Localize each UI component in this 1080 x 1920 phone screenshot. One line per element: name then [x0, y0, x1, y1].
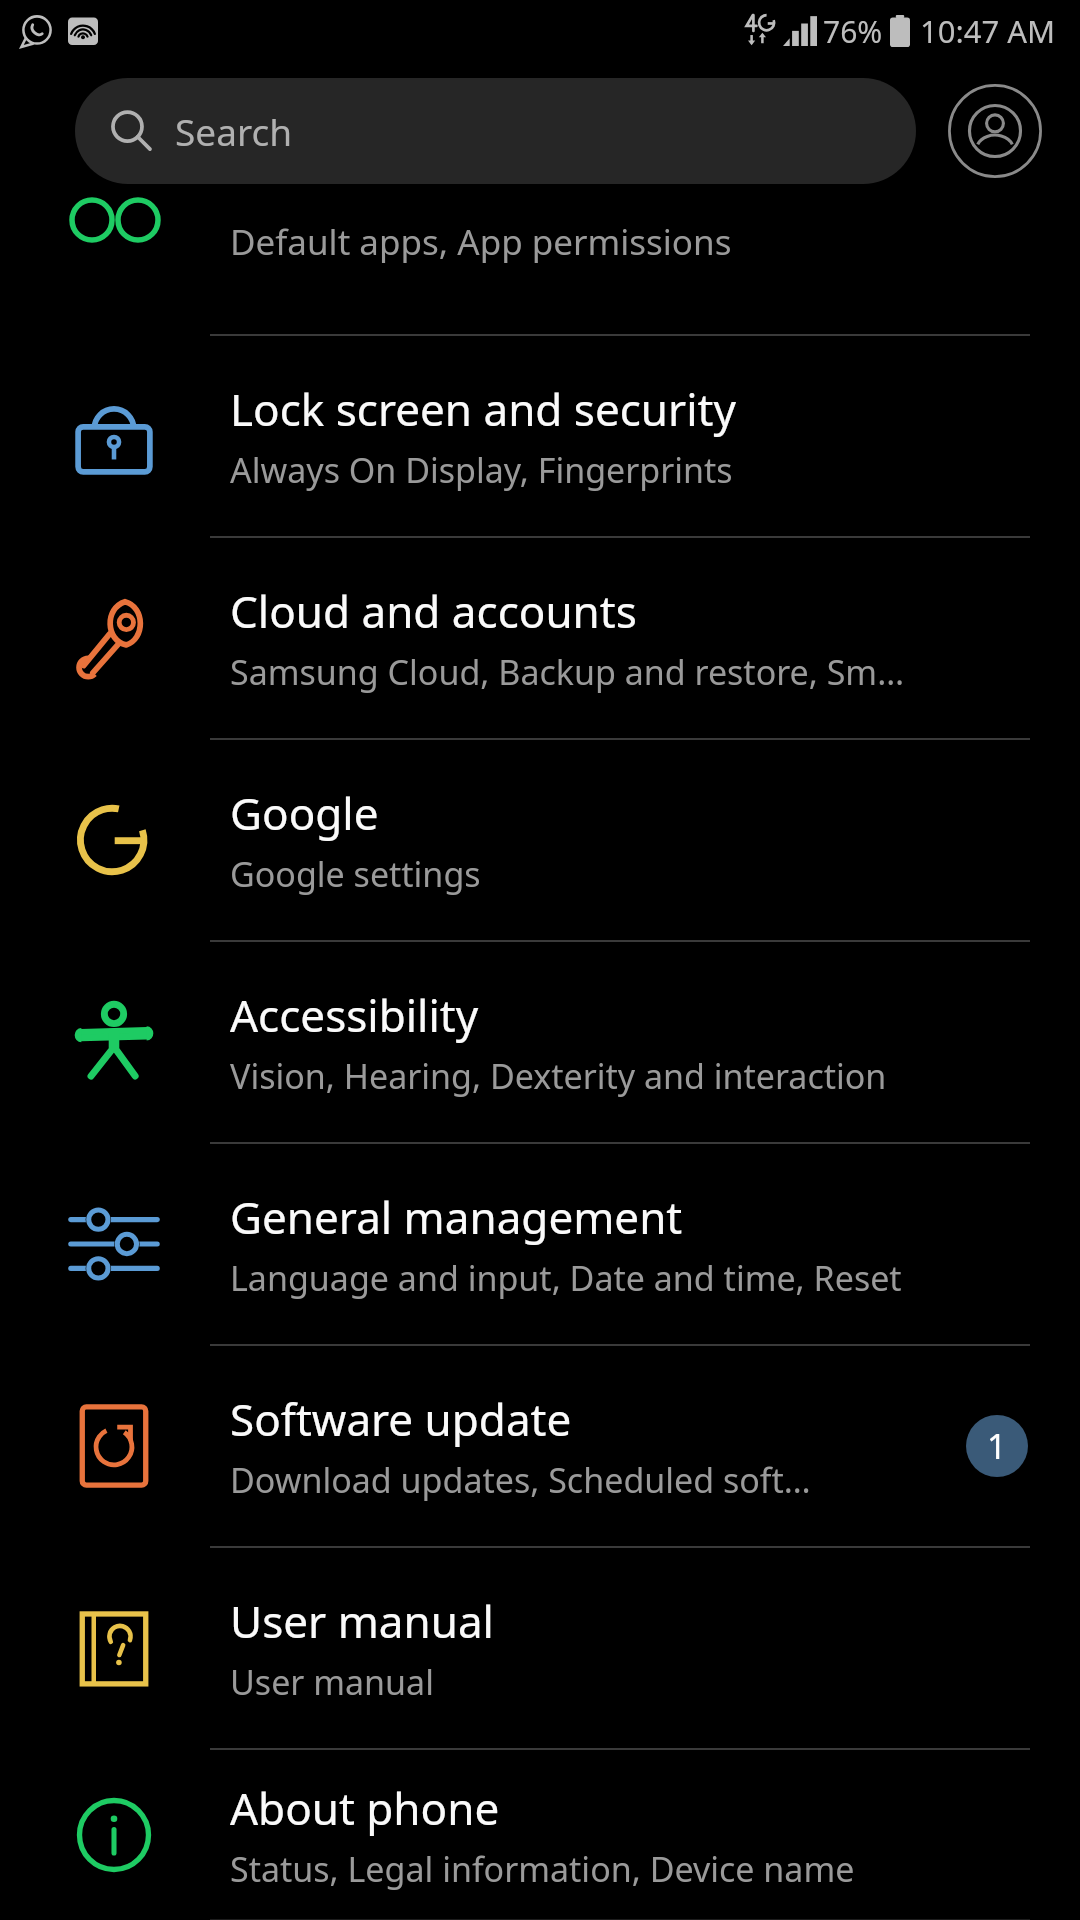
staticText: Always On Display, Fingerprints	[230, 447, 733, 493]
staticText: Lock screen and security	[230, 379, 736, 439]
button[interactable]: General management	[0, 1144, 1080, 1344]
staticText: General management	[230, 1187, 683, 1247]
staticText: User manual	[230, 1659, 434, 1705]
staticText: Accessibility	[230, 985, 479, 1045]
staticText: 76%	[823, 11, 883, 52]
staticText: Google settings	[230, 851, 481, 897]
button[interactable]: Google	[0, 740, 1080, 940]
button[interactable]: Default apps, App permissions	[0, 206, 1080, 334]
button[interactable]: About phone	[0, 1750, 1080, 1920]
staticText: Vision, Hearing, Dexterity and interacti…	[230, 1053, 887, 1099]
button[interactable]: User manual	[0, 1548, 1080, 1748]
staticText: Download updates, Scheduled soft…	[230, 1457, 811, 1503]
button[interactable]: Software update	[0, 1346, 1080, 1546]
staticText: Status, Legal information, Device name	[230, 1846, 855, 1892]
staticText: Samsung Cloud, Backup and restore, Smart…	[230, 649, 920, 695]
staticText: Cloud and accounts	[230, 581, 637, 641]
button[interactable]: Accessibility	[0, 942, 1080, 1142]
staticText: Default apps, App permissions	[230, 218, 732, 266]
staticText: Language and input, Date and time, Reset	[230, 1255, 902, 1301]
button[interactable]: Cloud and accounts	[0, 538, 1080, 738]
staticText: 10:47 AM	[920, 10, 1056, 52]
staticText: Search	[175, 106, 293, 156]
staticText: User manual	[230, 1591, 494, 1651]
button[interactable]: Lock screen and security	[0, 336, 1080, 536]
staticText: About phone	[230, 1778, 500, 1838]
button[interactable]: Account	[946, 82, 1044, 180]
staticText: Google	[230, 783, 379, 843]
staticText: 1	[987, 1423, 1007, 1469]
staticText: Software update	[230, 1389, 572, 1449]
button[interactable]: Search	[75, 78, 916, 184]
